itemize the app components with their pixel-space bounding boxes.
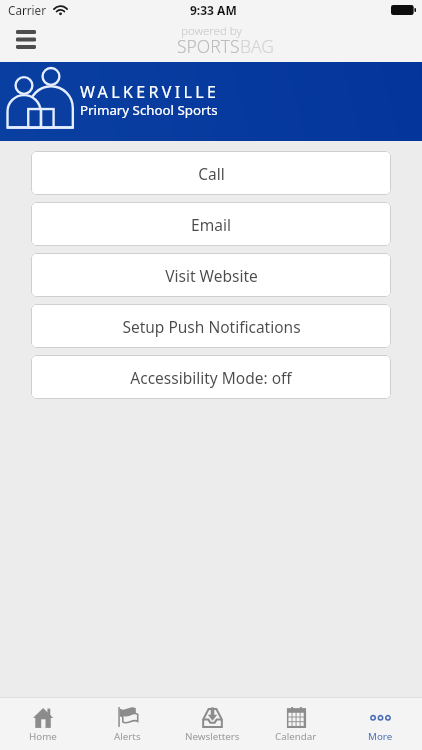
staticText: Home [29,730,57,743]
staticText: Calendar [275,730,317,743]
staticText: powered by [181,23,242,39]
button[interactable]: More [338,698,422,750]
staticText: SPORTS [177,34,240,58]
staticText: Email [191,214,231,235]
staticText: 9:33 AM [190,2,237,18]
button[interactable]: Call [31,151,391,195]
staticText: Setup Push Notifications [122,316,301,337]
staticText: Primary School Sports [80,101,218,119]
button[interactable]: Open menu [9,22,43,56]
staticText: WALKERVILLE [80,81,220,103]
button[interactable]: Setup Push Notifications [31,304,391,348]
staticText: Newsletters [185,730,240,743]
button[interactable]: Calendar [254,698,338,750]
button[interactable]: Alerts [85,698,170,750]
staticText: Visit Website [165,265,258,286]
button[interactable]: Visit Website [31,253,391,297]
button[interactable]: Home [0,698,85,750]
staticText: Call [198,163,225,184]
button[interactable]: Newsletters [170,698,254,750]
staticText: Carrier [8,2,47,18]
staticText: Accessibility Mode: off [130,367,292,388]
staticText: BAG [240,34,275,58]
staticText: Alerts [114,730,141,743]
button[interactable]: Accessibility Mode: off [31,355,391,399]
button[interactable]: Email [31,202,391,246]
staticText: More [368,730,393,743]
